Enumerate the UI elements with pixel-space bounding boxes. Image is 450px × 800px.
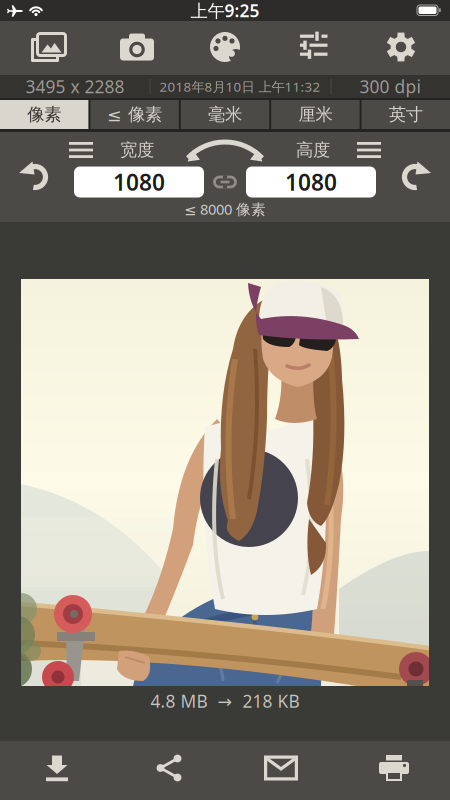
staticText: 上午9:25 <box>190 0 259 22</box>
button[interactable]: 像素 <box>0 100 88 129</box>
button[interactable]: Lock aspect ratio <box>0 132 450 222</box>
button[interactable]: Height presets <box>0 132 450 222</box>
button[interactable]: Settings <box>0 21 450 75</box>
button[interactable]: Adjustments <box>0 21 450 75</box>
button[interactable]: Camera <box>0 21 450 75</box>
button[interactable]: 厘米 <box>271 100 360 129</box>
button[interactable]: Undo <box>0 132 450 222</box>
staticText: 1080 <box>113 167 165 197</box>
staticText: 4.8 MB → 218 KB <box>150 689 299 712</box>
button[interactable]: Redo <box>0 132 450 222</box>
button[interactable]: 毫米 <box>181 100 269 129</box>
button[interactable]: Height value <box>0 132 450 222</box>
button[interactable]: Effects <box>0 21 450 75</box>
staticText: 毫米 <box>208 104 242 125</box>
button[interactable]: ≤ 像素 <box>90 100 179 129</box>
button[interactable]: Email <box>0 741 450 800</box>
button[interactable]: Width value <box>0 132 450 222</box>
button[interactable]: Photo Library <box>0 21 450 75</box>
button[interactable]: Save <box>0 741 450 800</box>
staticText: 2018年8月10日 上午11:32 <box>159 78 320 95</box>
staticText: 宽度 <box>120 139 154 161</box>
button[interactable]: Swap width and height <box>0 132 450 222</box>
button[interactable]: Print <box>0 741 450 800</box>
staticText: 3495 x 2288 <box>25 75 124 98</box>
staticText: 英寸 <box>389 104 423 125</box>
button[interactable]: Share <box>0 741 450 800</box>
staticText: 1080 <box>285 167 337 197</box>
staticText: 厘米 <box>298 104 332 125</box>
staticText: 高度 <box>296 139 330 161</box>
button[interactable]: 英寸 <box>362 100 450 129</box>
staticText: 300 dpi <box>359 75 420 98</box>
staticText: ≤ 8000 像素 <box>184 199 266 219</box>
button[interactable]: Width presets <box>0 132 450 222</box>
staticText: ≤ 像素 <box>107 104 162 125</box>
staticText: 像素 <box>27 104 61 125</box>
